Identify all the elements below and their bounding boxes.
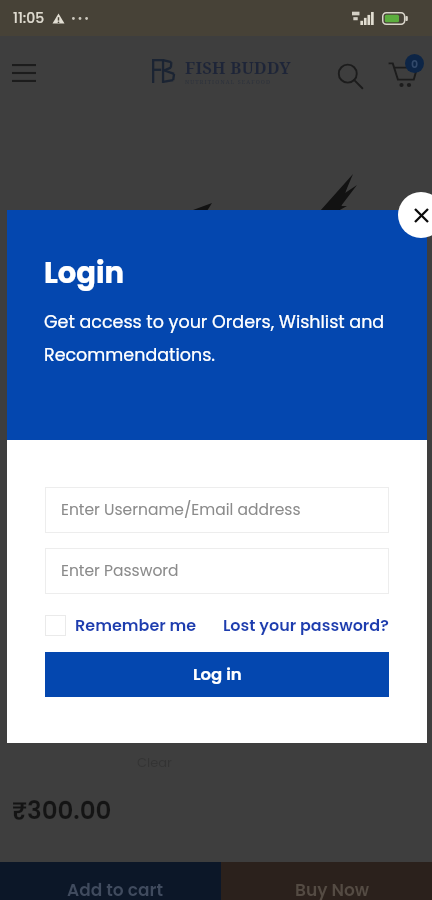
staticText: Enter Password [61,560,179,582]
button[interactable]: Enter Password [45,548,389,594]
button[interactable]: Search [332,59,368,95]
staticText: Buy Now [295,878,370,900]
staticText: Add to cart [67,878,163,900]
staticText: Remember me [75,614,197,636]
staticText: Clear [137,753,172,771]
staticText: Log in [193,663,242,686]
button[interactable]: Buy Now [221,862,432,900]
button[interactable]: Log in [45,652,389,697]
button[interactable]: Menu [4,53,44,93]
staticText: Get access to your Orders, Wishlist and … [44,310,396,367]
staticText: 0 [411,56,419,71]
staticText: Lost your password? [223,614,389,636]
staticText: ₹300.00 [12,793,112,827]
button[interactable]: Close [398,192,432,238]
staticText: 11:05 [13,8,45,28]
staticText: NUTRITIONAL SEAFOOD [185,78,272,85]
button[interactable]: Add to cart [0,862,221,900]
staticText: Enter Username/Email address [61,499,301,521]
staticText: Login [44,253,125,294]
button[interactable]: Remember me [45,614,197,636]
button[interactable]: Lost your password? [223,614,389,636]
staticText: FISH BUDDY [185,56,291,78]
button[interactable]: Enter Username/Email address [45,487,389,533]
button[interactable]: Cart [383,54,427,98]
